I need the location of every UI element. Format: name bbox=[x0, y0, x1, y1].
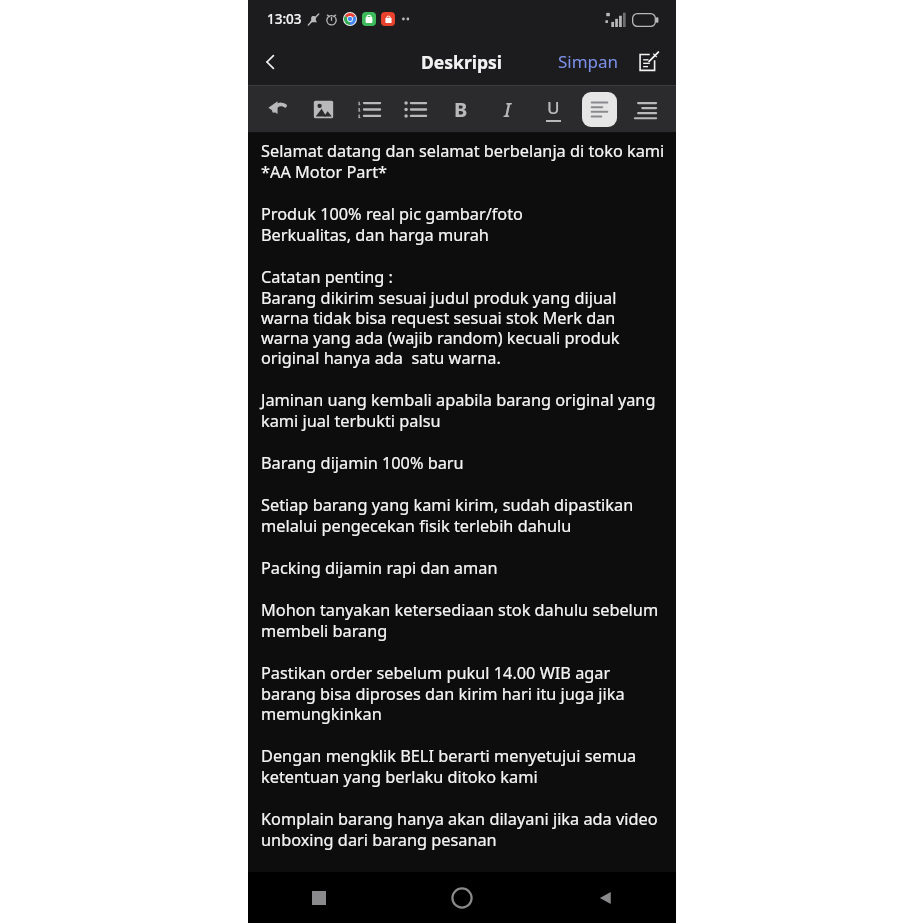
staticText: Pastikan order sebelum pukul 14.00 WIB a… bbox=[261, 662, 665, 725]
button[interactable]: Simpan bbox=[554, 44, 623, 79]
staticText: Simpan bbox=[558, 50, 619, 73]
button[interactable]: Selamat datang dan selamat berbelanja di… bbox=[248, 133, 676, 872]
button[interactable]: Italic bbox=[484, 85, 530, 133]
staticText: Mohon tanyakan ketersediaan stok dahulu … bbox=[261, 599, 665, 642]
button[interactable]: Numbered list bbox=[346, 85, 392, 133]
button[interactable]: Recent apps bbox=[248, 872, 390, 923]
staticText: Barang dijamin 100% baru bbox=[261, 452, 464, 474]
staticText: Packing dijamin rapi dan aman bbox=[261, 557, 498, 579]
button[interactable]: Bulleted list bbox=[392, 85, 438, 133]
staticText: Komplain barang hanya akan dilayani jika… bbox=[261, 808, 665, 851]
button[interactable]: Bold bbox=[438, 85, 484, 133]
staticText: Produk 100% real pic gambar/foto Berkual… bbox=[261, 203, 523, 246]
staticText: Catatan penting : Barang dikirim sesuai … bbox=[261, 266, 665, 369]
button[interactable]: Home bbox=[390, 872, 533, 923]
button[interactable]: Undo bbox=[256, 85, 301, 133]
staticText: U bbox=[547, 96, 560, 119]
button[interactable]: Insert image bbox=[301, 85, 346, 133]
button[interactable]: Underline bbox=[530, 85, 576, 133]
button[interactable]: Back bbox=[533, 872, 676, 923]
staticText: Selamat datang dan selamat berbelanja di… bbox=[261, 140, 665, 183]
button[interactable]: Back bbox=[248, 39, 294, 85]
staticText: 13:03 bbox=[267, 10, 302, 28]
staticText: Jaminan uang kembali apabila barang orig… bbox=[261, 389, 665, 432]
staticText: Dengan mengklik BELI berarti menyetujui … bbox=[261, 745, 665, 788]
button[interactable]: Align right bbox=[622, 85, 668, 133]
button[interactable]: Edit bbox=[631, 45, 665, 79]
staticText: Deskripsi bbox=[421, 50, 503, 74]
staticText: I bbox=[504, 96, 511, 123]
staticText: Setiap barang yang kami kirim, sudah dip… bbox=[261, 494, 665, 537]
button[interactable]: Align left bbox=[576, 85, 622, 133]
staticText: B bbox=[454, 96, 468, 123]
